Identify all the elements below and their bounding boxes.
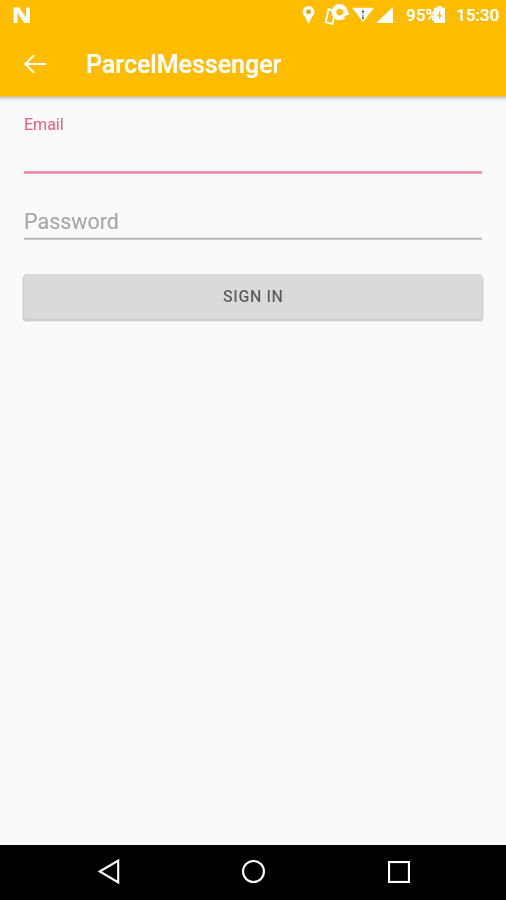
button[interactable]: Recent apps bbox=[359, 845, 439, 900]
staticText: 95% bbox=[406, 5, 438, 25]
staticText: Password bbox=[24, 209, 119, 234]
staticText: Email bbox=[24, 115, 64, 134]
button[interactable]: Home bbox=[213, 845, 293, 900]
staticText: 15:30 bbox=[456, 5, 500, 25]
button[interactable]: Back bbox=[69, 845, 149, 900]
staticText: SIGN IN bbox=[223, 287, 284, 306]
button[interactable]: Navigate up bbox=[11, 40, 59, 88]
button[interactable]: SIGN IN bbox=[24, 274, 482, 319]
staticText: ParcelMessenger bbox=[86, 50, 282, 79]
